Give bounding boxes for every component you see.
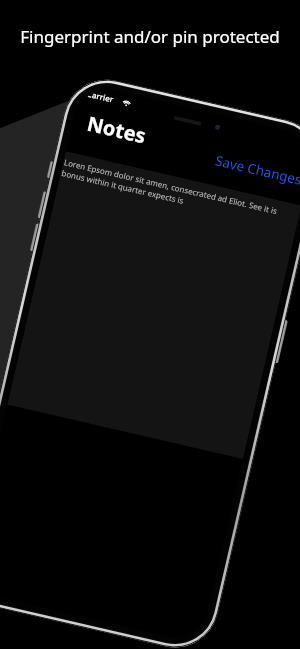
other: Wi-Fi signal	[122, 98, 132, 107]
staticText: Notes	[85, 110, 149, 150]
staticText: Loren Epsom dolor sit amen, consecrated …	[61, 156, 298, 231]
staticText: Save Changes	[214, 151, 300, 189]
staticText: Fingerprint and/or pin protected	[0, 25, 300, 48]
button[interactable]: Loren Epsom dolor sit amen, consecrated …	[7, 151, 300, 459]
staticText: Carrier	[86, 88, 115, 104]
button[interactable]: Save Changes	[211, 149, 300, 191]
